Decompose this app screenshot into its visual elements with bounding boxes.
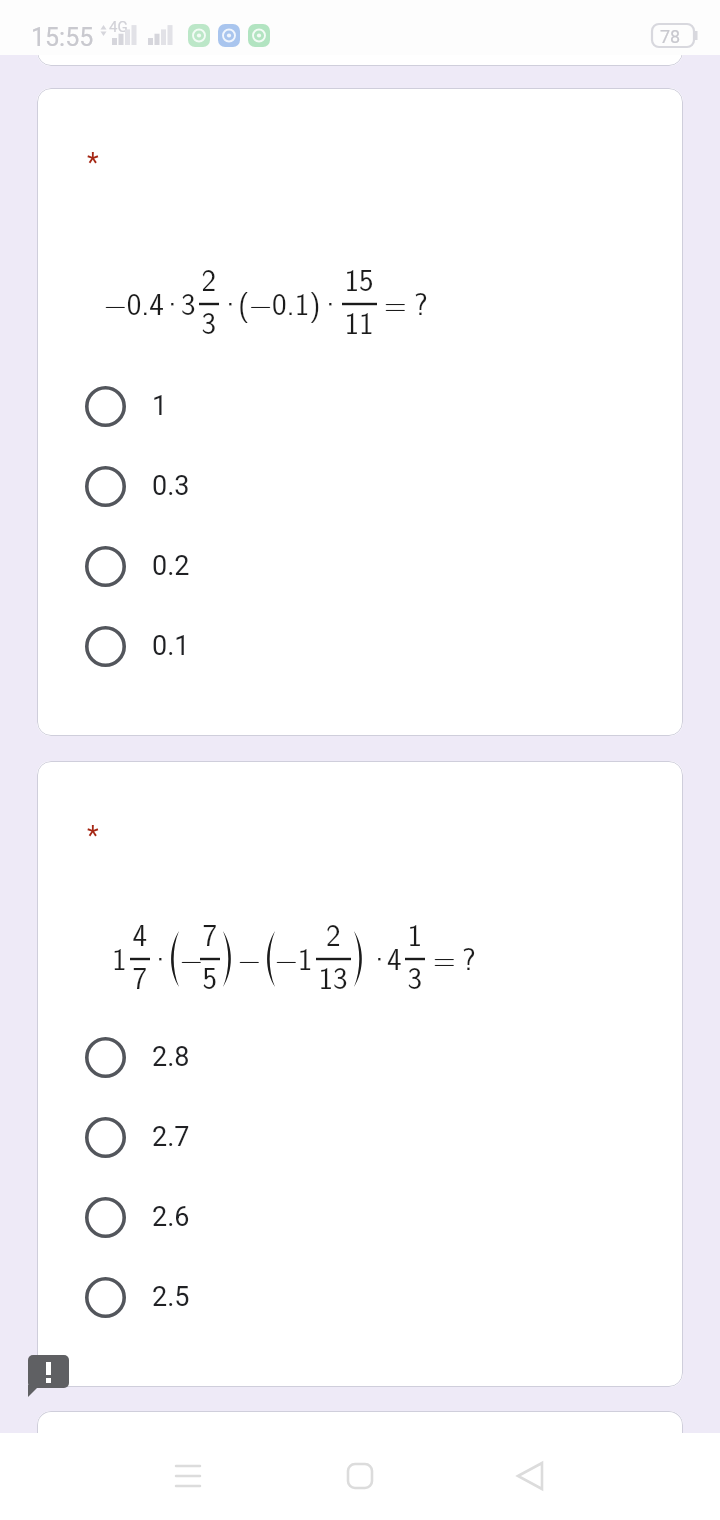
staticText: 4G <box>109 18 128 36</box>
staticText: 15:55 <box>31 23 94 52</box>
button[interactable]: 1 <box>37 366 683 446</box>
staticText: 0.2 <box>152 550 190 582</box>
button[interactable]: Back <box>494 1440 566 1512</box>
staticText: 78 <box>660 26 681 47</box>
button[interactable]: * <box>37 761 683 1387</box>
button[interactable]: 0.1 <box>37 606 683 686</box>
staticText: 1 <box>152 390 168 422</box>
button[interactable]: 2.7 <box>37 1097 683 1177</box>
button[interactable]: 2.6 <box>37 1177 683 1257</box>
button[interactable]: 0.3 <box>37 446 683 526</box>
button[interactable]: Recent apps <box>152 1440 224 1512</box>
staticText: * <box>87 820 99 852</box>
staticText: 0.1 <box>152 630 190 662</box>
staticText: 2.7 <box>152 1121 190 1153</box>
button[interactable]: Warning <box>28 1355 70 1398</box>
staticText: 2.8 <box>152 1041 190 1073</box>
button[interactable]: Home <box>324 1440 396 1512</box>
staticText: 2.6 <box>152 1201 190 1233</box>
button[interactable]: 2.8 <box>37 1017 683 1097</box>
staticText: * <box>87 147 99 179</box>
staticText: 2.5 <box>152 1281 190 1313</box>
button[interactable]: 2.5 <box>37 1257 683 1337</box>
button[interactable]: * <box>37 88 683 736</box>
staticText: 0.3 <box>152 470 190 502</box>
button[interactable]: 0.2 <box>37 526 683 606</box>
